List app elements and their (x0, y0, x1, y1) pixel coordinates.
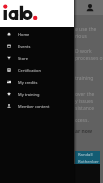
button[interactable]: Home (0, 28, 74, 40)
staticText: D work processes of (75, 48, 103, 62)
staticText: Store (18, 56, 28, 61)
button[interactable]: My credits (0, 76, 74, 88)
staticText: My training (18, 92, 40, 97)
button[interactable]: Certification (0, 64, 74, 76)
staticText: Randall Rothenberg, (78, 152, 100, 164)
staticText: ccess. (75, 117, 89, 124)
staticText: Home (18, 32, 30, 37)
staticText: Member content (18, 104, 50, 109)
staticText: over the y issues sistance (75, 91, 95, 112)
staticText: Certification (18, 68, 41, 73)
staticText: ar now (75, 128, 93, 135)
button[interactable]: Member content (0, 100, 74, 112)
staticText: e use the rious (75, 26, 97, 40)
staticText: My credits (18, 80, 38, 85)
button[interactable]: Events (0, 40, 74, 52)
staticText: Events (18, 44, 31, 49)
staticText: training (75, 75, 94, 82)
button[interactable]: Account (86, 4, 94, 12)
button[interactable]: Randall Rothenberg, (75, 151, 100, 164)
button[interactable]: My training (0, 88, 74, 100)
button[interactable]: Store (0, 52, 74, 64)
